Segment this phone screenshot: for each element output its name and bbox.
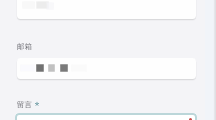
button[interactable]: 邮箱: [17, 42, 32, 51]
staticText: 留言: [17, 100, 32, 109]
button[interactable]: [15, 113, 197, 120]
button[interactable]: 留言: [17, 100, 41, 109]
button[interactable]: [17, 58, 196, 79]
other: Scroll: [205, 0, 216, 120]
